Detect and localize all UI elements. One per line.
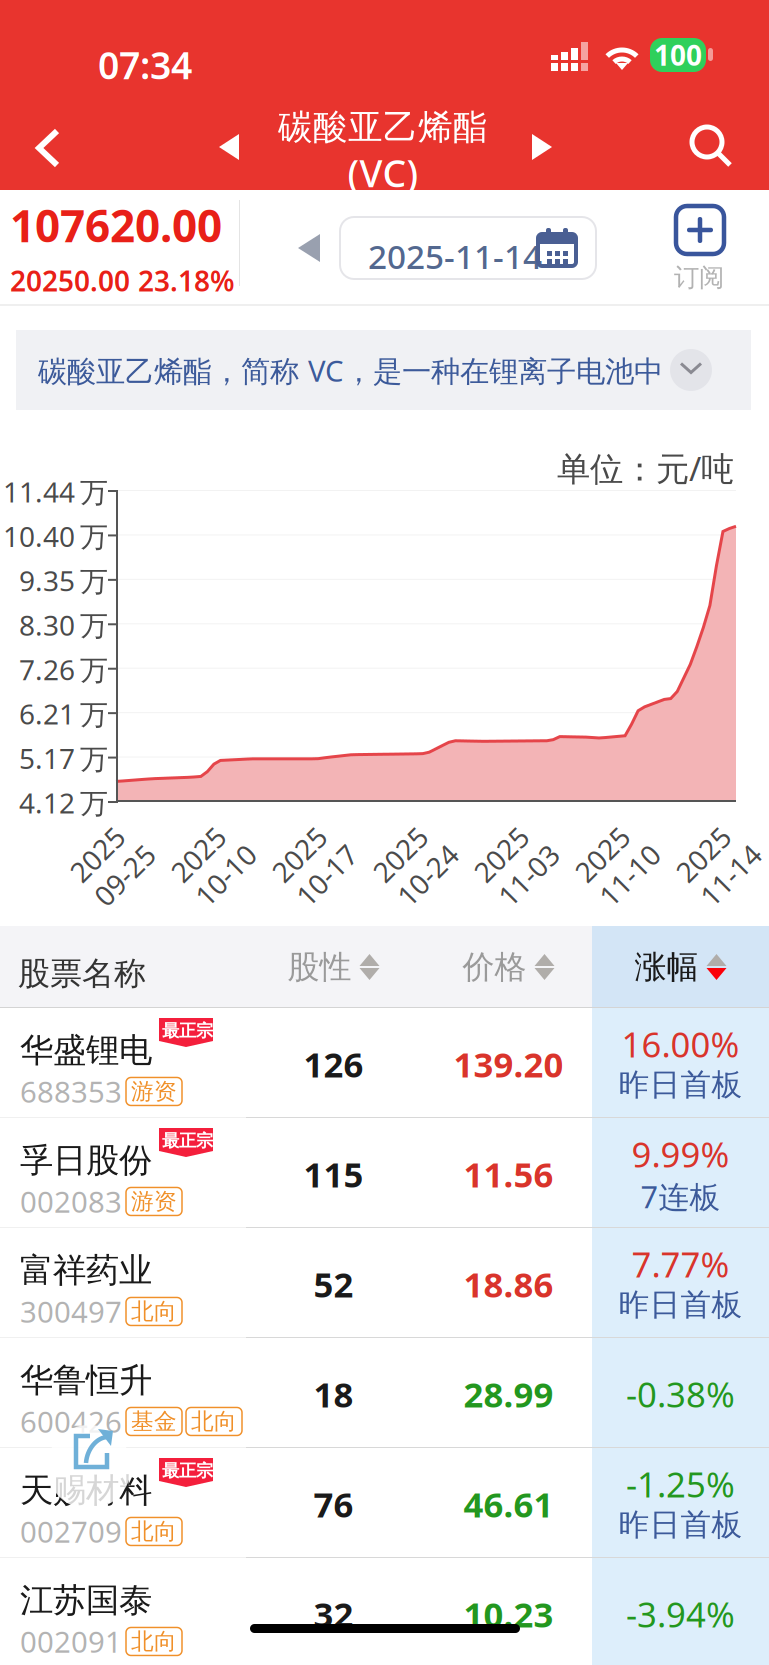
staticText: 7连板 xyxy=(640,1176,720,1217)
button[interactable]: Back xyxy=(20,125,76,171)
button[interactable]: 孚日股份 xyxy=(0,1118,769,1228)
staticText: 8.30 万 xyxy=(19,606,108,643)
staticText: 游资 xyxy=(131,1078,177,1105)
staticText: 2025 xyxy=(242,812,306,849)
button[interactable]: 江苏国泰 xyxy=(0,1558,769,1665)
staticText: 5.17 万 xyxy=(19,740,108,777)
staticText: 7.77% xyxy=(631,1241,729,1287)
button[interactable]: 天赐材料 xyxy=(0,1448,769,1558)
staticText: -0.38% xyxy=(626,1371,735,1417)
staticText: 北向 xyxy=(131,1628,177,1655)
staticText: 18.86 xyxy=(463,1261,553,1307)
staticText: 2025 xyxy=(646,812,710,849)
staticText: 09-25 xyxy=(40,846,113,883)
staticText: 46.61 xyxy=(463,1481,553,1527)
staticText: 10-10 xyxy=(141,846,214,883)
staticText: 最正宗 xyxy=(162,1020,213,1041)
staticText: 昨日首板 xyxy=(618,1286,742,1324)
staticText: 11-14 xyxy=(646,846,719,883)
staticText: 昨日首板 xyxy=(618,1506,742,1544)
staticText: 10-17 xyxy=(242,846,315,883)
staticText: 28.99 xyxy=(463,1371,553,1417)
staticText: 2025 xyxy=(444,812,508,849)
staticText: 北向 xyxy=(191,1408,237,1435)
staticText: 20250.00 xyxy=(10,262,130,299)
staticText: (VC) xyxy=(347,148,418,198)
staticText: 002091 xyxy=(20,1622,122,1661)
staticText: 天赐材料 xyxy=(20,1470,152,1511)
button[interactable]: Next stock xyxy=(525,132,559,162)
staticText: 富祥药业 xyxy=(20,1250,152,1291)
staticText: 115 xyxy=(303,1151,363,1197)
staticText: 游资 xyxy=(131,1188,177,1215)
button[interactable]: 富祥药业 xyxy=(0,1228,769,1338)
staticText: 9.99% xyxy=(631,1131,729,1177)
staticText: 碳酸亚乙烯酯，简称 VC，是一种在锂离子电池中 xyxy=(38,351,663,390)
staticText: 2025 xyxy=(545,812,609,849)
staticText: 华盛锂电 xyxy=(20,1030,152,1071)
staticText: 002083 xyxy=(20,1182,122,1221)
staticText: 涨幅 xyxy=(634,947,698,987)
staticText: 16.00% xyxy=(621,1021,739,1067)
staticText: 北向 xyxy=(131,1298,177,1325)
staticText: 7.26 万 xyxy=(19,651,108,688)
staticText: 9.35 万 xyxy=(19,562,108,599)
staticText: 126 xyxy=(303,1041,363,1087)
staticText: 10.40 万 xyxy=(3,517,108,555)
button[interactable]: 订阅 xyxy=(650,204,750,298)
staticText: 碳酸亚乙烯酯 xyxy=(278,106,488,149)
staticText: 11.56 xyxy=(463,1151,553,1197)
staticText: 107620.00 xyxy=(10,196,222,254)
staticText: 单位：元/吨 xyxy=(557,446,734,490)
staticText: 华鲁恒升 xyxy=(20,1360,152,1401)
button[interactable]: 股性 xyxy=(246,926,421,1008)
staticText: 2025 xyxy=(141,812,205,849)
staticText: 北向 xyxy=(131,1518,177,1545)
button[interactable]: 涨幅 xyxy=(592,926,769,1008)
staticText: 002709 xyxy=(20,1512,122,1551)
staticText: 139.20 xyxy=(453,1041,563,1087)
staticText: 100 xyxy=(654,36,702,74)
staticText: 最正宗 xyxy=(162,1460,213,1481)
button[interactable]: 2025-11-14 xyxy=(340,217,596,279)
staticText: 300497 xyxy=(20,1292,122,1331)
staticText: 600426 xyxy=(20,1402,122,1441)
staticText: 32 xyxy=(313,1591,353,1637)
staticText: 11-03 xyxy=(444,846,517,883)
button[interactable]: Previous day xyxy=(292,232,326,264)
staticText: 10-24 xyxy=(343,846,416,883)
staticText: 11-10 xyxy=(545,846,618,883)
staticText: 10.23 xyxy=(463,1591,553,1637)
staticText: 股性 xyxy=(287,947,351,987)
staticText: 6.21 万 xyxy=(19,695,108,732)
staticText: 688353 xyxy=(20,1072,122,1111)
staticText: 4.12 万 xyxy=(19,784,108,821)
staticText: 18 xyxy=(313,1371,353,1417)
staticText: 江苏国泰 xyxy=(20,1580,152,1621)
staticText: 价格 xyxy=(462,947,526,987)
staticText: 孚日股份 xyxy=(20,1140,152,1181)
staticText: 2025-11-14 xyxy=(368,234,542,278)
staticText: 基金 xyxy=(131,1408,177,1435)
button[interactable]: Share xyxy=(47,1425,131,1509)
button[interactable]: 华盛锂电 xyxy=(0,1008,769,1118)
button[interactable]: Search xyxy=(692,127,732,167)
staticText: 最正宗 xyxy=(162,1130,213,1151)
button[interactable]: 华鲁恒升 xyxy=(0,1338,769,1448)
staticText: -3.94% xyxy=(626,1591,735,1637)
staticText: 股票名称 xyxy=(18,954,146,993)
staticText: 11.44 万 xyxy=(3,473,108,510)
button[interactable]: 价格 xyxy=(421,926,596,1008)
staticText: 23.18% xyxy=(138,262,235,299)
staticText: 76 xyxy=(313,1481,353,1527)
staticText: 2025 xyxy=(343,812,407,849)
staticText: -1.25% xyxy=(626,1461,735,1507)
staticText: 2025 xyxy=(40,812,104,849)
button[interactable]: 碳酸亚乙烯酯，简称 VC，是一种在锂离子电池中 xyxy=(16,330,751,410)
staticText: 订阅 xyxy=(674,262,724,293)
staticText: 07:34 xyxy=(98,40,192,90)
button[interactable]: Previous stock xyxy=(212,132,246,162)
staticText: 52 xyxy=(313,1261,353,1307)
staticText: 昨日首板 xyxy=(618,1066,742,1104)
